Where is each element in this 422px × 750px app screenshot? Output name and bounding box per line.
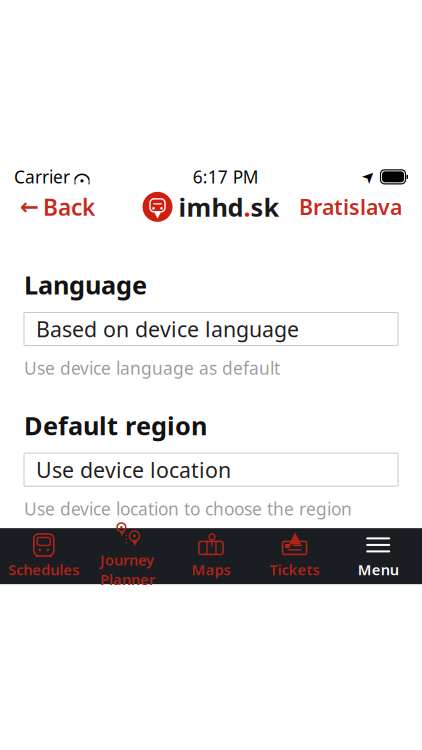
staticText: imhd [178, 190, 243, 224]
button[interactable]: Schedules [2, 527, 86, 585]
staticText: Based on device language [36, 315, 299, 343]
staticText: Use device location [36, 455, 231, 484]
staticText: Journey Planner [100, 550, 155, 589]
button[interactable]: Menu [336, 527, 420, 585]
staticText: Menu [358, 560, 399, 579]
button[interactable]: ← [10, 186, 105, 228]
staticText: 6:17 PM [193, 165, 259, 188]
staticText: Use device location to choose the region [24, 497, 352, 520]
staticText: Maps [191, 560, 230, 579]
button[interactable]: ▾ [86, 517, 169, 595]
button[interactable]: Based on device language [24, 312, 398, 345]
staticText: Back [43, 192, 95, 222]
button[interactable]: Use device location [24, 453, 398, 486]
staticText: sk [250, 190, 279, 224]
staticText: . [243, 190, 250, 224]
staticText: Use device language as default [24, 356, 280, 379]
staticText: Schedules [8, 560, 79, 579]
staticText: Default region [24, 408, 207, 442]
button[interactable]: Bratislava [289, 187, 412, 227]
staticText: Language [24, 268, 147, 301]
button[interactable]: ▲ [253, 527, 336, 585]
staticText: ▲ [289, 528, 301, 546]
staticText: ← [20, 194, 39, 220]
staticText: ▼ [154, 209, 161, 220]
staticText: ➤ [362, 168, 375, 186]
staticText: Carrier [14, 165, 70, 188]
staticText: ▾ [131, 535, 137, 549]
button[interactable]: Maps [169, 527, 253, 585]
staticText: Tickets [270, 560, 320, 579]
staticText: ▾ [119, 526, 124, 539]
staticText: Bratislava [299, 193, 402, 221]
